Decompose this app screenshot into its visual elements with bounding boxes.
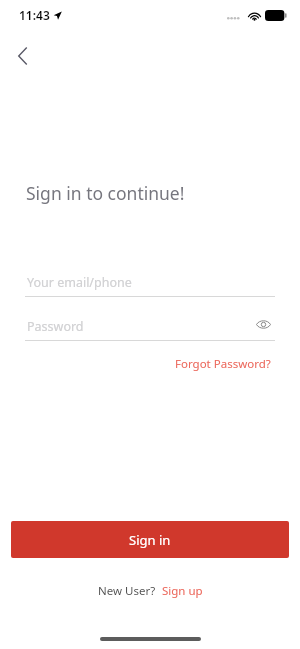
button[interactable]: Your email/phone xyxy=(25,268,275,297)
button[interactable]: Back xyxy=(6,40,38,72)
button[interactable]: Password xyxy=(25,311,275,341)
staticText: Sign up xyxy=(162,583,203,599)
staticText: Your email/phone xyxy=(27,274,132,291)
staticText: Sign in xyxy=(129,531,171,549)
button[interactable]: Forgot Password? xyxy=(171,352,275,376)
button[interactable]: Sign in xyxy=(11,521,289,558)
button[interactable]: Show password xyxy=(251,312,275,336)
staticText: Password xyxy=(27,318,84,335)
staticText: Forgot Password? xyxy=(175,356,271,372)
button[interactable]: Sign up xyxy=(162,583,203,599)
staticText: 11:43 xyxy=(19,7,50,23)
staticText: Sign in to continue! xyxy=(26,181,185,205)
staticText: New User? xyxy=(98,583,156,599)
